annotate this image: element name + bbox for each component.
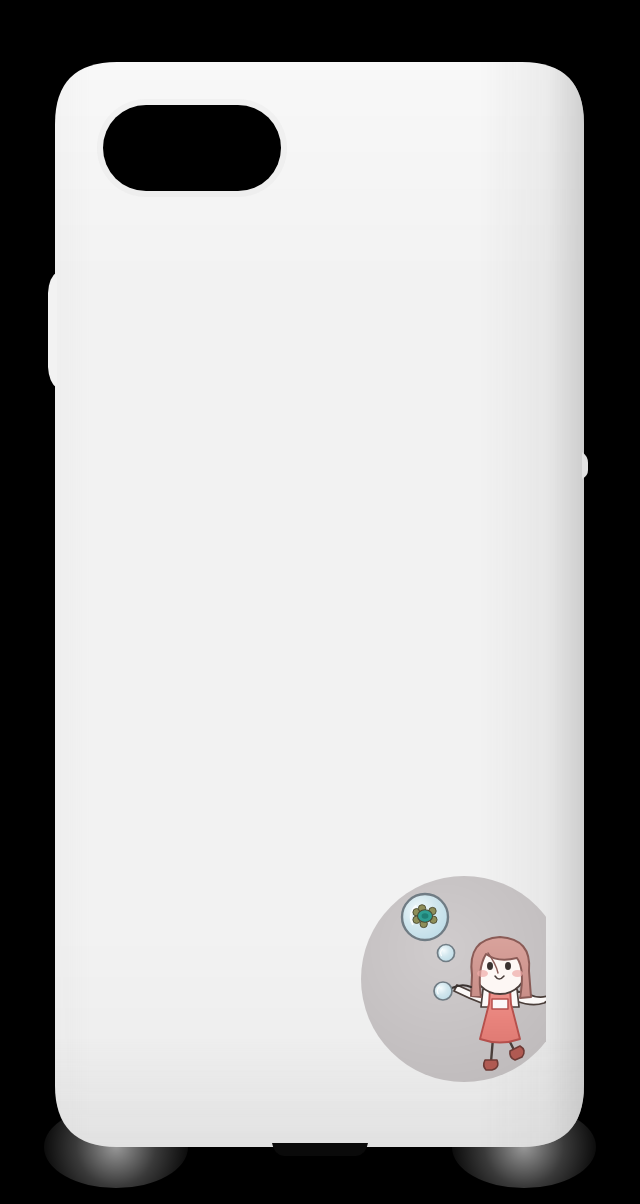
button[interactable]: White phone case with bubble girl print [0, 0, 640, 1204]
